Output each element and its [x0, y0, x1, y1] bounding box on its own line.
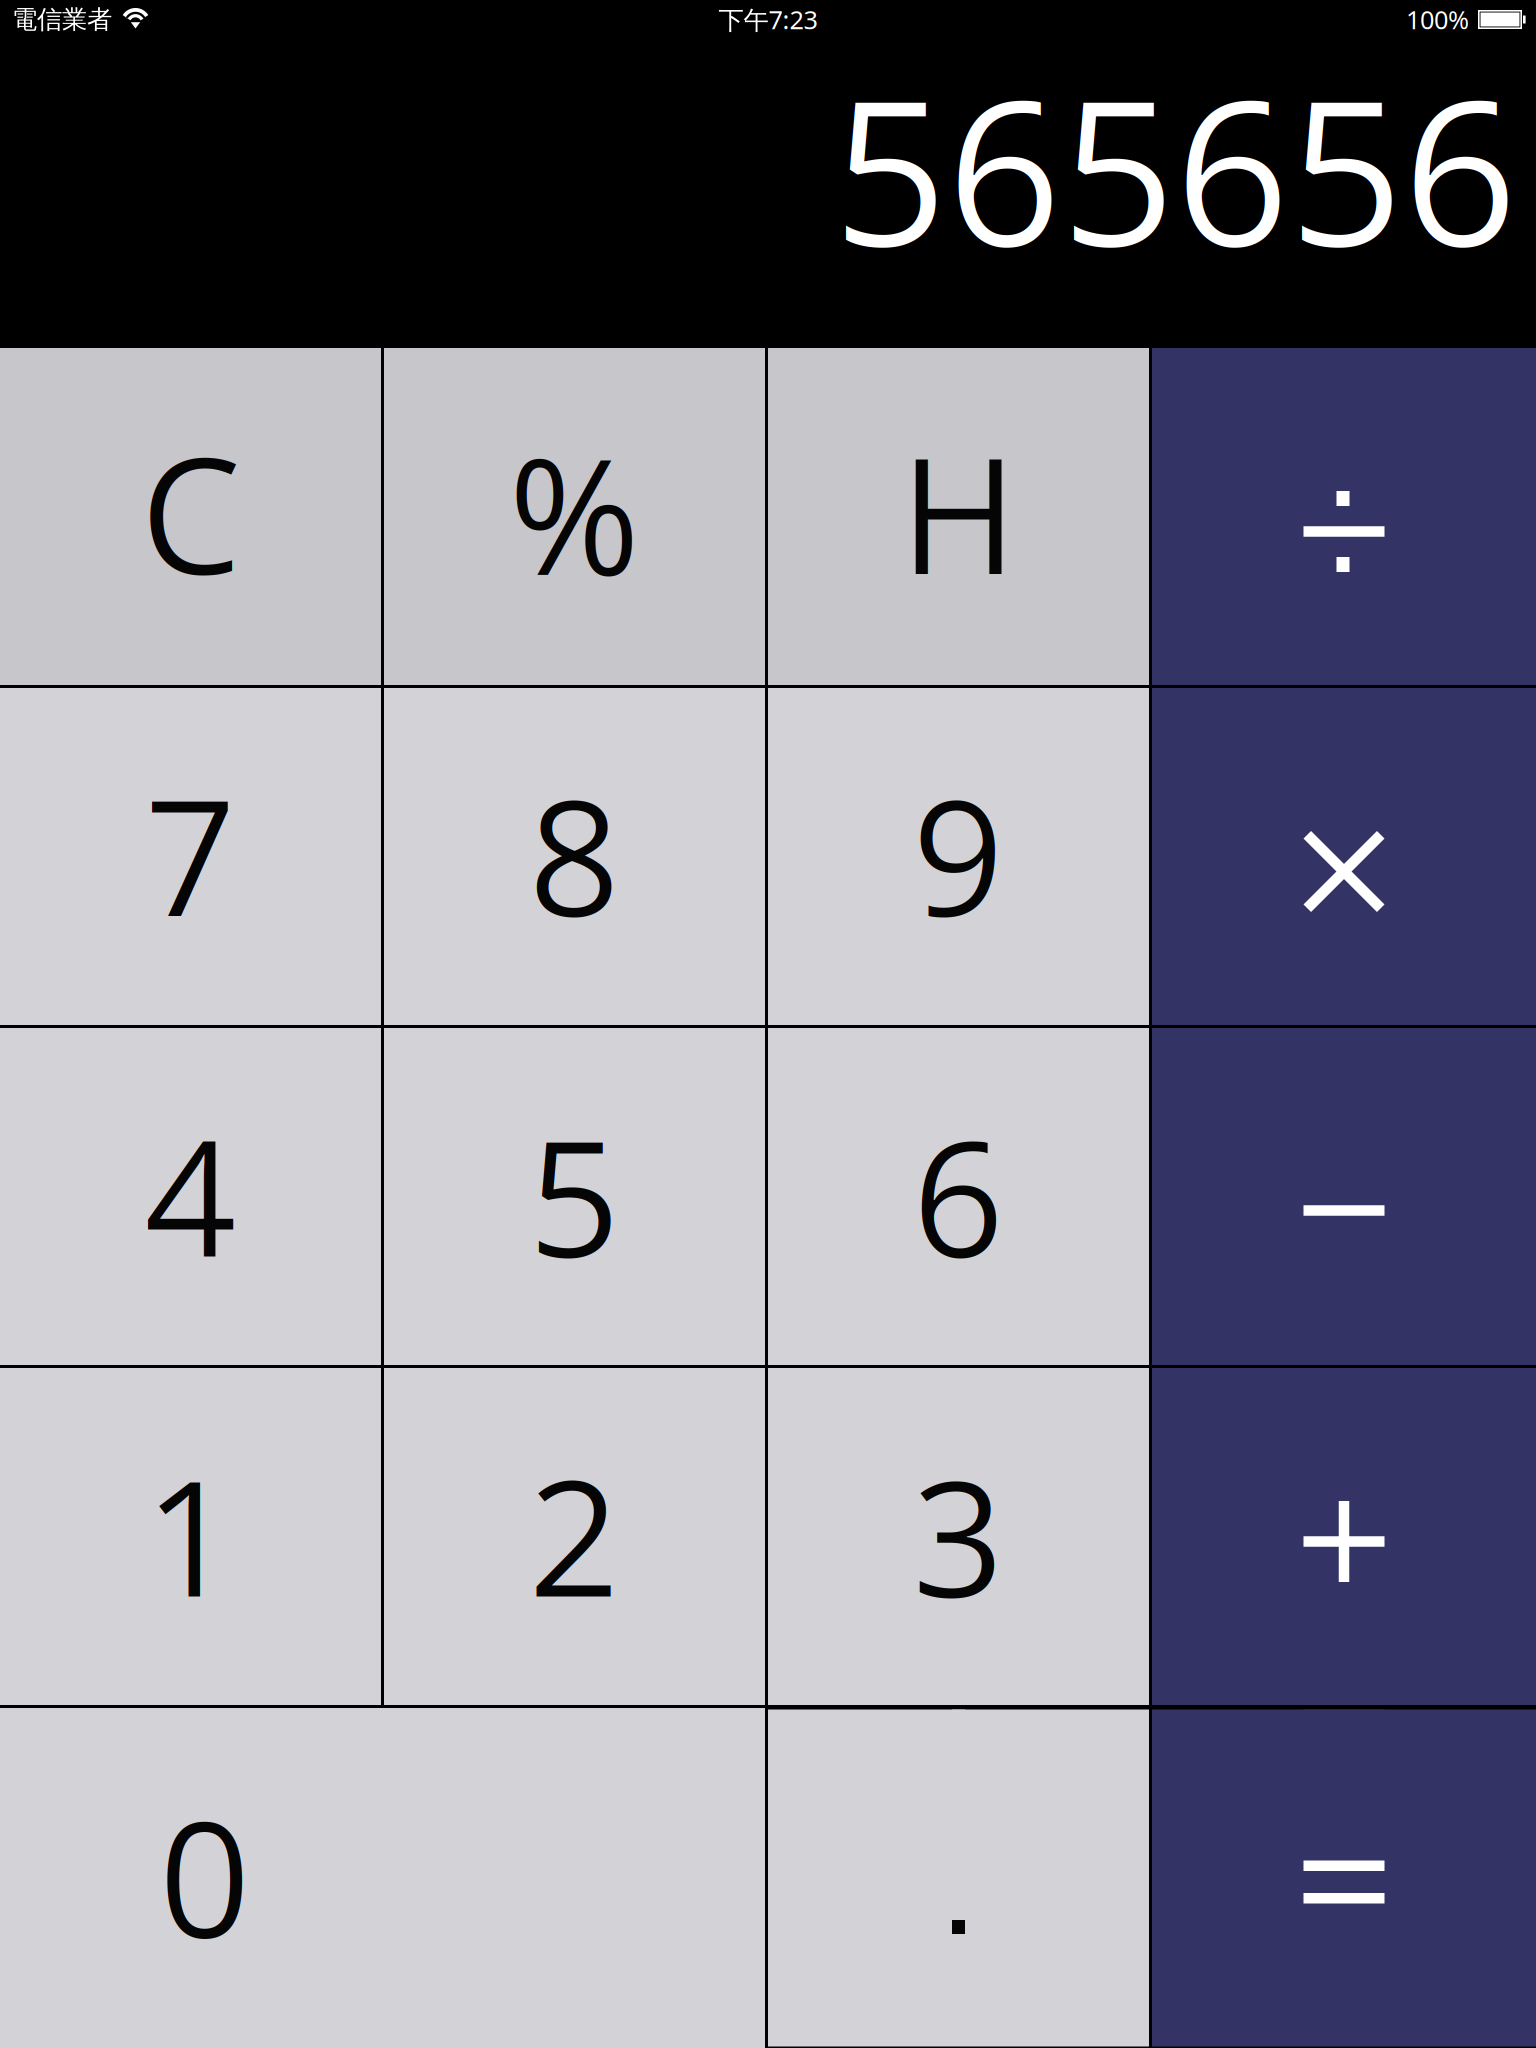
staticText: 565656	[833, 32, 1517, 304]
staticText: 0	[159, 1766, 251, 1984]
staticText: 4	[144, 1085, 236, 1303]
staticText: C	[140, 402, 240, 620]
button[interactable]: 2	[384, 1368, 765, 1705]
staticText: 8	[528, 744, 620, 962]
button[interactable]: Multiply	[1152, 688, 1536, 1025]
button[interactable]: 8	[384, 688, 765, 1025]
staticText: H	[900, 402, 1017, 620]
button[interactable]: Decimal point	[768, 1709, 1149, 2046]
button[interactable]: Subtract	[1152, 1028, 1536, 1365]
button[interactable]: Divide	[1152, 348, 1536, 685]
button[interactable]: H	[768, 348, 1149, 685]
button[interactable]: C	[0, 348, 381, 685]
staticText: 下午7:23	[718, 3, 817, 36]
staticText: 電信業者	[12, 4, 112, 35]
staticText: 2	[528, 1425, 620, 1643]
staticText: 1	[144, 1425, 236, 1643]
staticText: 100%	[1406, 3, 1469, 36]
staticText: 5	[528, 1085, 620, 1303]
button[interactable]: 0	[0, 1708, 765, 2048]
button[interactable]: Add	[1152, 1368, 1536, 1705]
button[interactable]: 5	[384, 1028, 765, 1365]
button[interactable]: 9	[768, 688, 1149, 1025]
staticText: 3	[912, 1425, 1004, 1643]
staticText: %	[508, 403, 640, 621]
staticText: 7	[144, 744, 236, 962]
staticText: 6	[912, 1085, 1004, 1303]
button[interactable]: Equals	[1152, 1709, 1536, 2046]
staticText: 9	[912, 744, 1004, 962]
button[interactable]: 1	[0, 1368, 381, 1705]
button[interactable]: 7	[0, 688, 381, 1025]
button[interactable]: %	[384, 348, 765, 685]
button[interactable]: 3	[768, 1368, 1149, 1705]
button[interactable]: 6	[768, 1028, 1149, 1365]
button[interactable]: 4	[0, 1028, 381, 1365]
